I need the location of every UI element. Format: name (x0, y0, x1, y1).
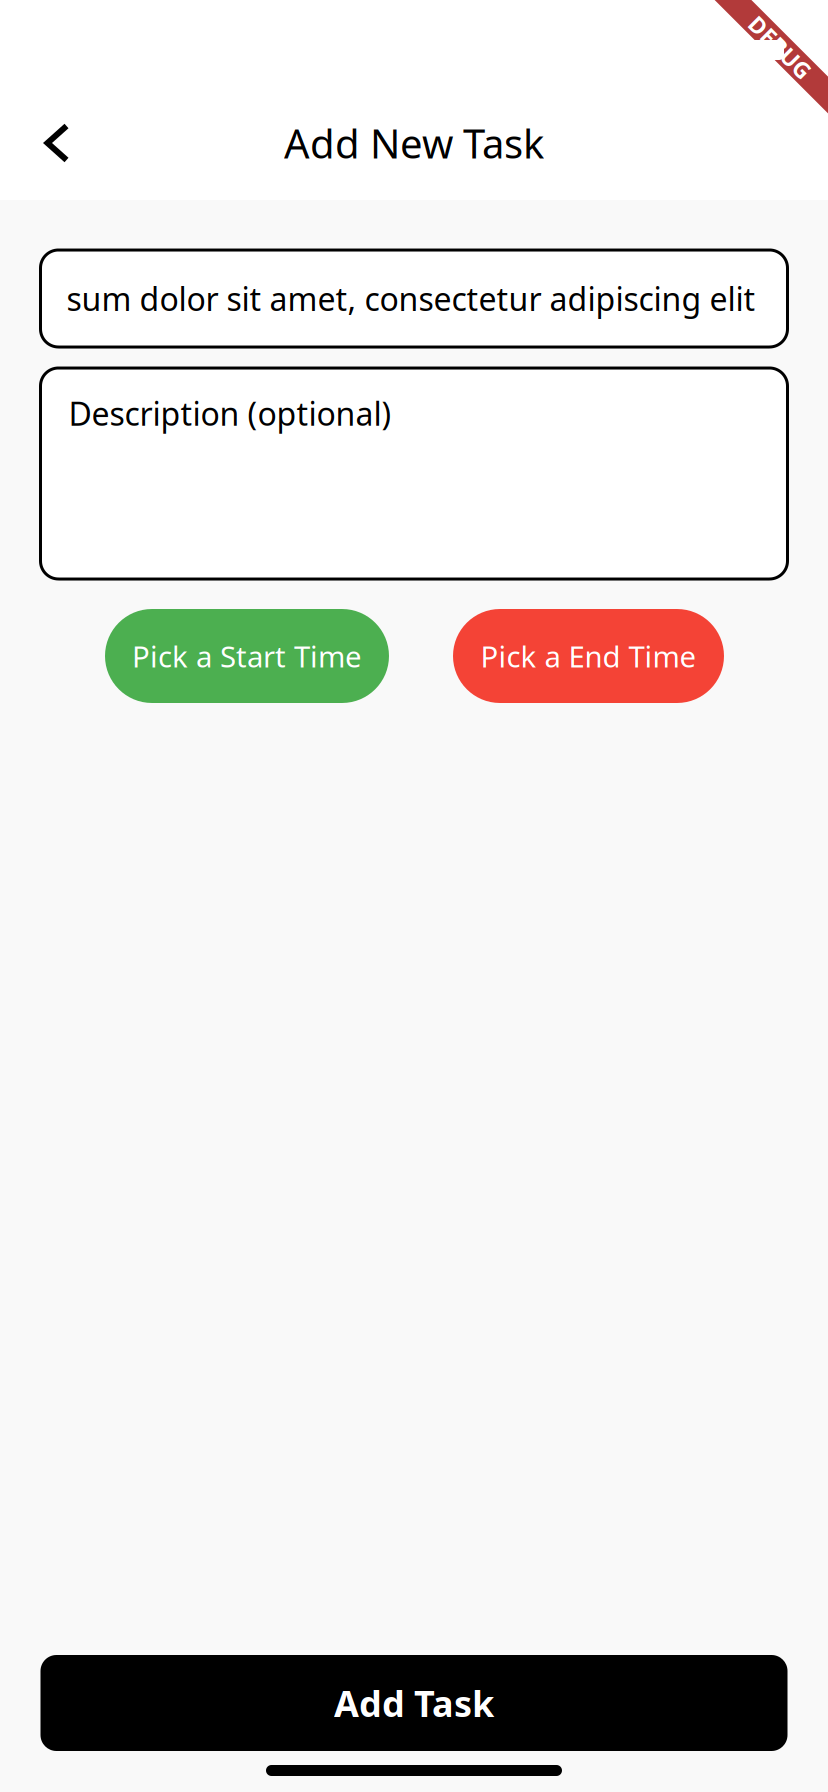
staticText: Description (optional) (68, 392, 391, 434)
button[interactable]: Back (0, 14, 114, 186)
staticText: Pick a Start Time (132, 636, 362, 675)
staticText: Add Task (334, 1679, 494, 1727)
button[interactable]: Pick a Start Time (105, 609, 389, 703)
button[interactable]: Add Task (40, 1655, 787, 1751)
button[interactable]: sum dolor sit amet, consectetur adipisci… (40, 250, 787, 347)
button[interactable]: Pick a End Time (453, 609, 724, 703)
staticText: DEBUG (741, 32, 819, 62)
staticText: Add New Task (284, 116, 544, 169)
staticText: sum dolor sit amet, consectetur adipisci… (66, 277, 755, 320)
button[interactable]: Description (optional) (40, 368, 787, 579)
staticText: Pick a End Time (480, 636, 696, 675)
